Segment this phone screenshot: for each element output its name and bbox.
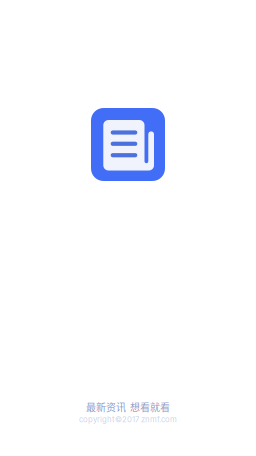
staticText: 最新资讯 想看就看 (86, 400, 170, 414)
staticText: copyright©2017 znmf.com (79, 415, 177, 424)
